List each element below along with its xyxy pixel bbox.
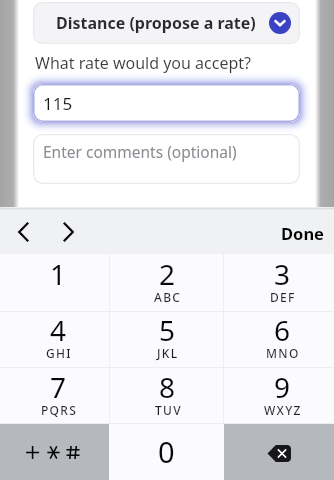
button[interactable]: Enter comments (optional) — [33, 134, 300, 184]
button[interactable]: 5 — [110, 312, 224, 368]
button[interactable]: 8 — [110, 368, 224, 424]
staticText: 8 — [159, 368, 176, 406]
staticText: Distance (propose a rate) — [56, 12, 256, 34]
button[interactable]: 6 — [224, 312, 334, 368]
staticText: 4 — [50, 311, 67, 349]
staticText: 3 — [274, 255, 291, 293]
staticText: WXYZ — [264, 402, 302, 418]
staticText: 0 — [158, 432, 175, 471]
button[interactable]: Previous field — [5, 210, 41, 253]
button[interactable]: 115 — [33, 84, 300, 122]
staticText: ABC — [154, 289, 182, 305]
staticText: Enter comments (optional) — [43, 141, 237, 162]
staticText: 7 — [50, 368, 67, 406]
button[interactable]: 4 — [0, 312, 110, 368]
staticText: PQRS — [41, 402, 78, 418]
staticText: 115 — [43, 92, 73, 115]
button[interactable]: Done — [267, 211, 334, 254]
button[interactable]: 9 — [224, 368, 334, 424]
button[interactable]: Distance (propose a rate) — [33, 2, 300, 44]
button[interactable]: Delete — [224, 424, 334, 480]
staticText: What rate would you accept? — [35, 52, 251, 74]
button[interactable]: 7 — [0, 368, 110, 424]
button[interactable]: 1 — [0, 254, 110, 312]
button[interactable]: 0 — [109, 424, 224, 480]
button[interactable]: Next field — [50, 210, 86, 253]
button[interactable]: 2 — [110, 254, 224, 312]
staticText: GHI — [46, 345, 72, 361]
staticText: Done — [281, 222, 324, 244]
staticText: JKL — [157, 345, 179, 361]
staticText: 1 — [50, 255, 67, 293]
staticText: TUV — [155, 402, 182, 418]
staticText: 6 — [274, 311, 291, 349]
staticText: 2 — [159, 255, 176, 293]
staticText: 5 — [159, 311, 176, 349]
staticText: 9 — [274, 368, 291, 406]
button[interactable]: 3 — [224, 254, 334, 312]
staticText: DEF — [270, 289, 296, 305]
button[interactable]: Symbols — [0, 424, 109, 480]
staticText: MNO — [266, 345, 300, 361]
